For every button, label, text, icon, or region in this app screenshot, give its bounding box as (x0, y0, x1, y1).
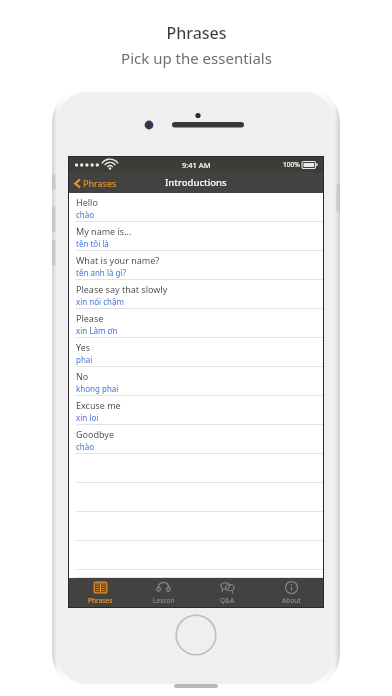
staticText: tên tôi là (76, 238, 109, 249)
button[interactable]: Please say that slowly (69, 280, 323, 309)
staticText: What is your name? (76, 254, 160, 266)
staticText: phai (76, 354, 93, 365)
staticText: Yes (76, 341, 91, 353)
staticText: Q&A (220, 596, 235, 605)
staticText: chào (76, 441, 95, 452)
staticText: Hello (76, 196, 98, 208)
button[interactable]: Lesson (132, 578, 195, 607)
button[interactable]: Q&A (195, 578, 259, 607)
staticText: Phrases (83, 177, 117, 189)
staticText: chào (76, 209, 95, 220)
staticText: Introductions (165, 176, 227, 189)
staticText: No (76, 370, 89, 382)
button[interactable]: What is your name? (69, 251, 323, 280)
staticText: Pick up the essentials (121, 48, 272, 68)
button[interactable]: Phrases (69, 578, 132, 607)
button[interactable]: Please (69, 309, 323, 338)
button[interactable]: About (259, 578, 323, 607)
staticText: xin loi (76, 412, 99, 423)
button[interactable]: No (69, 367, 323, 396)
staticText: Goodbye (76, 428, 114, 440)
staticText: xin nói chậm (76, 296, 124, 307)
staticText: Please say that slowly (76, 283, 168, 295)
button[interactable]: Goodbye (69, 425, 323, 454)
button[interactable]: Excuse me (69, 396, 323, 425)
staticText: 100% (283, 160, 300, 169)
button[interactable]: Phrases (74, 177, 117, 189)
staticText: khong phai (76, 383, 119, 394)
button[interactable]: Hello (69, 193, 323, 222)
staticText: Lesson (153, 596, 175, 605)
staticText: tên anh là gì? (76, 267, 126, 278)
staticText: My name is... (76, 225, 132, 237)
staticText: 9:41 AM (182, 160, 211, 170)
staticText: Excuse me (76, 399, 121, 411)
button[interactable]: Yes (69, 338, 323, 367)
button[interactable]: My name is... (69, 222, 323, 251)
staticText: Please (76, 312, 104, 324)
staticText: Phrases (166, 22, 227, 44)
staticText: Phrases (88, 596, 113, 605)
staticText: About (282, 596, 301, 605)
staticText: xin Làm ơn (76, 325, 118, 336)
